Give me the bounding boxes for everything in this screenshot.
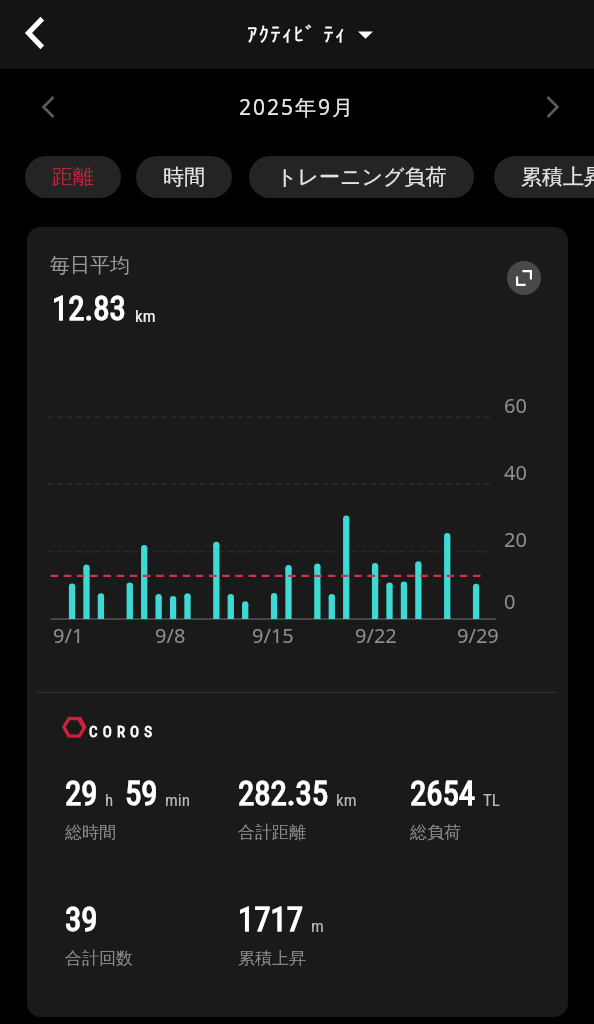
staticText: 1717 xyxy=(238,900,304,939)
staticText: 282.35 xyxy=(238,774,329,813)
staticText: 59 xyxy=(125,774,158,813)
staticText: m xyxy=(311,916,324,936)
staticText: 20 xyxy=(504,526,527,553)
staticText: 毎日平均 xyxy=(50,253,130,278)
staticText: km xyxy=(135,306,156,326)
staticText: 時間 xyxy=(163,164,205,190)
button[interactable]: Next month xyxy=(534,88,572,126)
staticText: COROS xyxy=(89,723,158,741)
staticText: TL xyxy=(483,790,500,810)
staticText: 39 xyxy=(65,900,98,939)
staticText: km xyxy=(336,790,357,810)
staticText: 累積上昇 xyxy=(521,164,594,190)
staticText: min xyxy=(165,790,190,810)
staticText: 総負荷 xyxy=(410,822,461,843)
staticText: 合計回数 xyxy=(65,948,133,969)
staticText: 9/29 xyxy=(457,622,499,649)
staticText: 距離 xyxy=(52,164,94,190)
button[interactable]: 時間 xyxy=(136,156,232,198)
staticText: 9/1 xyxy=(53,622,84,649)
staticText: 0 xyxy=(504,588,516,615)
staticText: 60 xyxy=(504,392,527,419)
button[interactable]: トレーニング負荷 xyxy=(249,156,474,198)
staticText: h xyxy=(105,790,114,810)
staticText: 12.83 xyxy=(52,289,126,328)
staticText: 9/22 xyxy=(355,622,397,649)
staticText: トレーニング負荷 xyxy=(276,164,447,190)
button[interactable]: 累積上昇 xyxy=(494,156,594,198)
staticText: 2654 xyxy=(410,774,476,813)
staticText: 40 xyxy=(504,459,527,486)
button[interactable]: Expand chart xyxy=(507,261,541,295)
staticText: 29 xyxy=(65,774,98,813)
staticText: 9/15 xyxy=(252,622,294,649)
staticText: 9/8 xyxy=(155,622,186,649)
staticText: 合計距離 xyxy=(238,822,306,843)
staticText: ｱｸﾃｨﾋﾞ ﾃｨ xyxy=(247,20,347,49)
staticText: 累積上昇 xyxy=(238,948,306,969)
button[interactable]: Back xyxy=(12,11,56,55)
button[interactable]: 距離 xyxy=(25,156,121,198)
button[interactable]: Previous month xyxy=(29,88,67,126)
staticText: 総時間 xyxy=(65,822,116,843)
staticText: 2025年9月 xyxy=(239,93,356,122)
button[interactable]: ｱｸﾃｨﾋﾞ ﾃｨ xyxy=(247,20,373,49)
